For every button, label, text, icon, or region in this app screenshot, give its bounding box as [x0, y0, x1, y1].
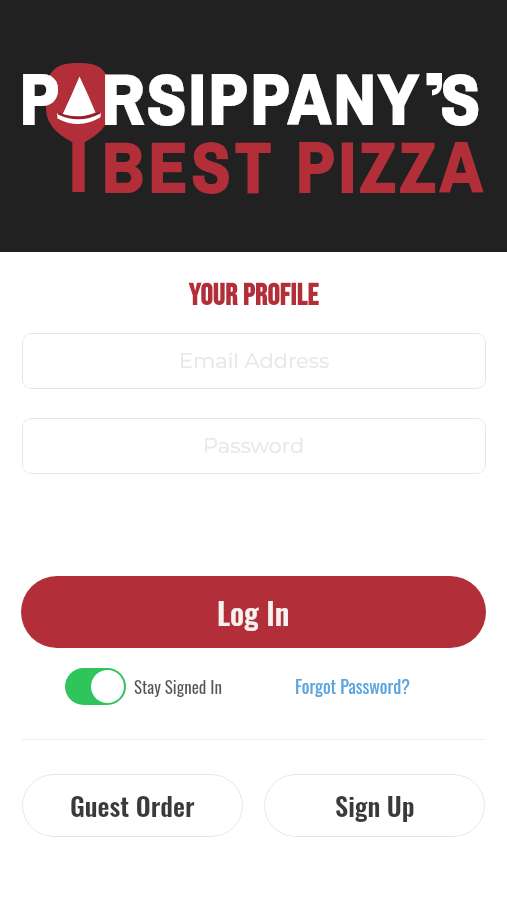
- staticText: RSIPPANY: [102, 51, 421, 147]
- staticText: YOUR PROFILE: [0, 278, 507, 314]
- staticText: Log In: [217, 589, 290, 635]
- staticText: BEST PIZZA: [102, 119, 487, 215]
- button[interactable]: Forgot Password?: [295, 673, 410, 700]
- staticText: Email Address: [179, 348, 330, 374]
- button[interactable]: Guest Order: [22, 774, 243, 837]
- staticText: Guest Order: [70, 786, 195, 825]
- staticText: Password: [203, 433, 305, 459]
- staticText: S: [441, 51, 484, 147]
- staticText: Sign Up: [335, 786, 415, 825]
- button[interactable]: Sign Up: [264, 774, 485, 837]
- staticText: Stay Signed In: [134, 674, 222, 699]
- other: Stay signed in toggle, on: [65, 668, 126, 705]
- staticText: P: [20, 51, 63, 147]
- button[interactable]: Email Address: [22, 333, 486, 389]
- button[interactable]: Stay signed in toggle, on: [65, 668, 222, 705]
- button[interactable]: Password: [22, 418, 486, 474]
- button[interactable]: Log In: [21, 576, 486, 648]
